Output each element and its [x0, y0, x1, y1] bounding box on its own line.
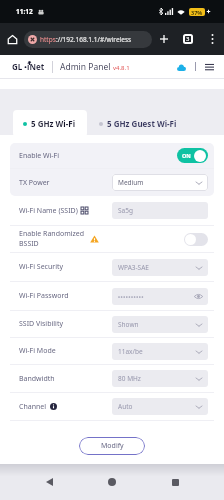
button[interactable]: 11ax/be	[118, 343, 202, 360]
staticText: Bandwidth	[19, 374, 55, 384]
staticText: Medium	[118, 178, 144, 187]
staticText: 5 GHz Wi-Fi	[31, 118, 76, 129]
button[interactable]: Modify	[79, 437, 145, 455]
button[interactable]: TX Power	[19, 169, 208, 196]
staticText: 11:12	[16, 7, 33, 16]
button[interactable]: New tab	[152, 27, 175, 51]
button[interactable]: WPA3-SAE	[118, 259, 202, 276]
button[interactable]	[118, 288, 203, 305]
button[interactable]: Enable Wi-Fi toggle, on	[177, 148, 208, 163]
staticText: Shown	[118, 320, 139, 329]
button[interactable]: Enable randomized BSSID toggle, off	[184, 233, 208, 246]
staticText: Wi-Fi Security	[19, 262, 64, 272]
button[interactable]: 5 GHz Guest Wi-Fi	[99, 110, 177, 137]
button[interactable]: Enable Randomized	[19, 226, 208, 252]
button[interactable]: Back	[35, 470, 63, 494]
staticText: 11ax/be	[118, 347, 143, 356]
button[interactable]: GL	[12, 61, 45, 72]
staticText: iNet	[27, 61, 45, 72]
button[interactable]: Bandwidth	[19, 365, 208, 392]
staticText: ON	[182, 152, 191, 159]
button[interactable]: 5 GHz Wi-Fi	[23, 110, 76, 137]
button[interactable]: Sa5g	[118, 202, 202, 219]
staticText: SSID Visibility	[19, 319, 63, 329]
button[interactable]: Channel	[19, 393, 208, 420]
button[interactable]: Menu	[199, 57, 219, 77]
staticText: Wi-Fi Password	[19, 291, 69, 301]
staticText: WPA3-SAE	[118, 263, 149, 272]
staticText: Channel	[19, 402, 47, 412]
button[interactable]: Wi-Fi Password	[19, 282, 208, 310]
staticText: TX Power	[19, 178, 50, 188]
button[interactable]: 80 MHz	[118, 370, 202, 387]
button[interactable]: Medium	[118, 174, 202, 191]
button[interactable]: Wi-Fi Mode	[19, 338, 208, 364]
button[interactable]: Cloud	[172, 57, 190, 77]
button[interactable]: More options	[200, 27, 224, 51]
staticText: Wi-Fi Mode	[19, 346, 56, 356]
button[interactable]: Enable Wi-Fi	[19, 143, 208, 168]
staticText: Auto	[118, 402, 133, 411]
button[interactable]: SSID Visibility	[19, 311, 208, 337]
staticText: v4.8.1	[113, 64, 130, 72]
staticText: Sa5g	[118, 206, 133, 215]
staticText: ://192.168.1.1/#/wireless	[56, 35, 132, 44]
button[interactable]: Recents	[161, 470, 189, 494]
staticText: 3	[186, 35, 190, 43]
staticText: 80 MHz	[118, 374, 141, 383]
staticText: BSSID	[19, 239, 39, 249]
button[interactable]: Shown	[118, 316, 202, 333]
staticText: Enable Wi-Fi	[19, 151, 60, 161]
button[interactable]: Home	[98, 470, 126, 494]
staticText: 5 GHz Guest Wi-Fi	[107, 118, 177, 129]
button[interactable]: Auto	[118, 398, 202, 415]
button[interactable]: https	[28, 31, 146, 48]
staticText: https	[40, 35, 56, 44]
staticText: Enable Randomized	[19, 229, 85, 239]
button[interactable]: Home	[0, 27, 24, 51]
staticText: Admin Panel	[60, 61, 111, 73]
button[interactable]: Wi-Fi Security	[19, 253, 208, 281]
button[interactable]: Tabs	[175, 27, 200, 51]
staticText: Modify	[101, 441, 124, 451]
staticText: Wi-Fi Name (SSID)	[19, 206, 78, 216]
staticText: GL	[12, 61, 23, 72]
button[interactable]: Wi-Fi Name (SSID)	[19, 196, 208, 225]
staticText: 37%	[191, 9, 203, 16]
